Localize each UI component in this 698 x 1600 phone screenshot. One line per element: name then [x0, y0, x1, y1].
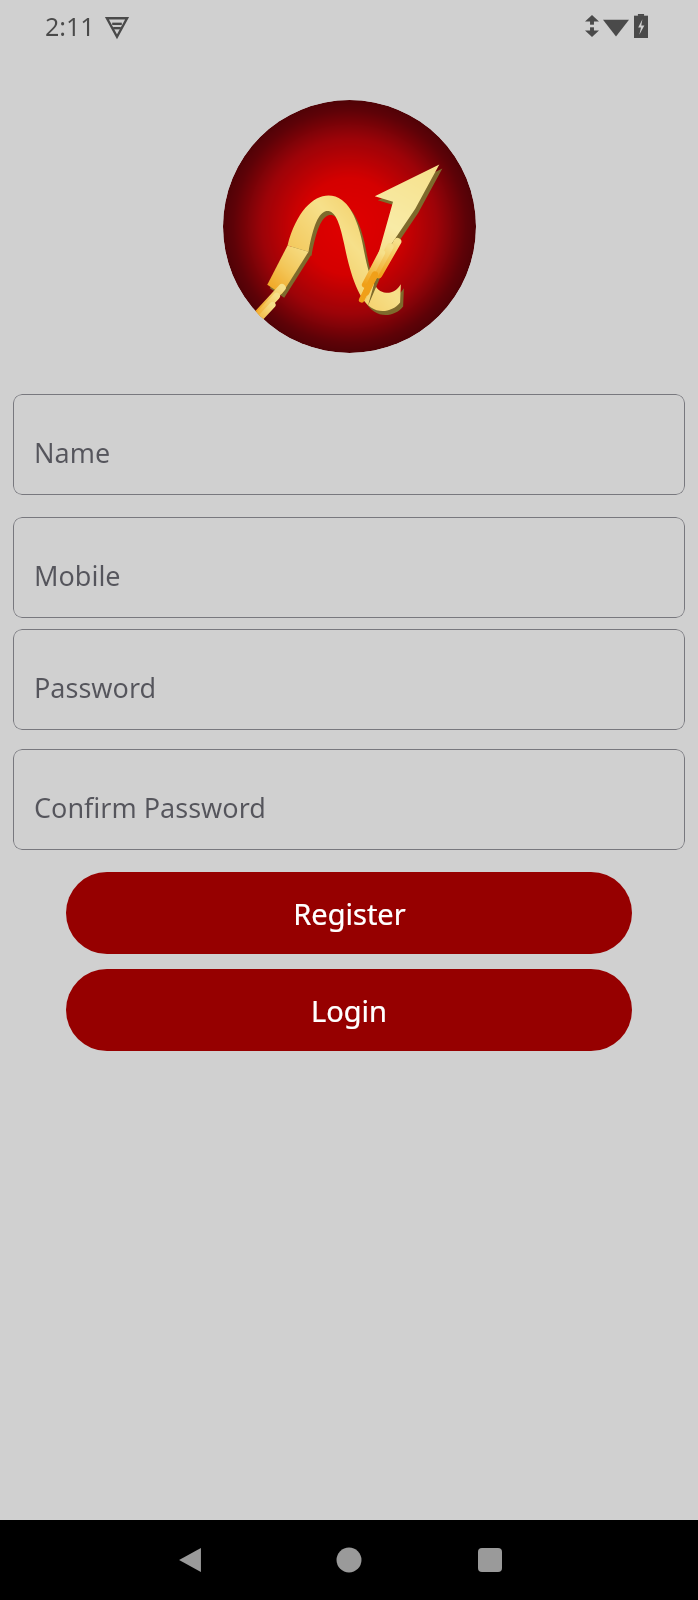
staticText: Password: [34, 669, 157, 706]
button[interactable]: Name: [13, 394, 685, 495]
staticText: Confirm Password: [34, 789, 266, 826]
staticText: Login: [311, 991, 387, 1030]
button[interactable]: Mobile: [13, 517, 685, 618]
button[interactable]: Register: [66, 872, 632, 954]
button[interactable]: Password: [13, 629, 685, 730]
button[interactable]: Back: [158, 1528, 222, 1592]
staticText: 2:11: [45, 9, 95, 43]
other: App logo: [223, 100, 476, 353]
staticText: Name: [34, 434, 111, 471]
button[interactable]: Home: [317, 1528, 381, 1592]
button[interactable]: Recent apps: [458, 1528, 522, 1592]
staticText: Register: [293, 894, 406, 933]
button[interactable]: Login: [66, 969, 632, 1051]
staticText: Mobile: [34, 557, 121, 594]
button[interactable]: Confirm Password: [13, 749, 685, 850]
